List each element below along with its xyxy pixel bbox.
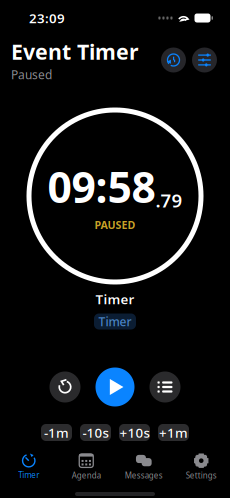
staticText: 23:09 (29, 9, 65, 27)
button[interactable]: Settings (172, 450, 230, 484)
button[interactable]: -10s (80, 424, 111, 441)
staticText: -10s (82, 424, 108, 441)
staticText: Agenda (72, 470, 101, 481)
staticText: Event Timer (11, 37, 139, 66)
staticText: -1m (44, 424, 69, 441)
staticText: Timer (18, 470, 39, 480)
button[interactable]: History (161, 47, 186, 72)
button[interactable]: +1m (158, 424, 189, 441)
staticText: Paused (11, 67, 52, 83)
button[interactable]: Timer (0, 450, 57, 484)
button[interactable]: Laps (149, 371, 180, 402)
button[interactable]: Messages (115, 450, 172, 484)
button[interactable]: Agenda (57, 450, 115, 484)
staticText: PAUSED (94, 218, 135, 232)
staticText: +10s (119, 424, 149, 441)
staticText: .79 (155, 188, 182, 213)
staticText: +1m (159, 424, 188, 441)
button[interactable]: Timer settings (192, 47, 217, 72)
staticText: Timer (95, 290, 134, 308)
button[interactable]: -1m (41, 424, 72, 441)
staticText: Settings (186, 470, 217, 481)
button[interactable]: Reset (49, 371, 80, 402)
button[interactable]: Timer (94, 313, 136, 329)
staticText: Messages (125, 470, 163, 481)
button[interactable]: Start (95, 367, 134, 406)
button[interactable]: +10s (119, 424, 150, 441)
staticText: Timer (98, 313, 131, 329)
staticText: 09:58 (47, 158, 155, 215)
